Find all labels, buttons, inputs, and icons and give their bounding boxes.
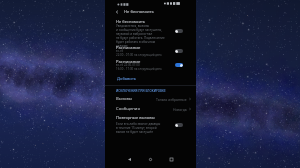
staticText: Вызовы [116,96,132,102]
button[interactable]: Toggle on [175,63,183,67]
staticText: ИСКЛЮЧЕНИЯ ПРИ БЛОКИРОВКЕ [116,89,166,93]
staticText: Повторные вызовы [116,115,155,120]
staticText: Никогда [173,107,187,112]
button[interactable]: Recents [167,155,176,164]
button[interactable]: Back [125,155,134,164]
staticText: вс-сб 22:00 - 07:00 на следующий день [116,49,182,56]
staticText: Расписание [116,59,141,65]
staticText: Сообщения [116,106,140,112]
button[interactable]: Home [146,155,155,164]
staticText: вс-сб 22:00-07:00 16:00 - 17:00 на следу… [116,63,182,70]
staticText: Не беспокоить [116,19,146,24]
staticText: Только избранные [156,97,187,102]
staticText: Добавить [117,76,137,81]
button[interactable]: Добавить [117,76,137,81]
staticText: Расписание [116,45,141,51]
staticText: Уведомления, вызовы и сообщения будут за… [116,24,167,48]
staticText: Если кто-либо звонит дважды в течение 15… [116,122,168,134]
button[interactable]: Сообщения [105,105,196,113]
button[interactable]: Toggle off [175,123,183,127]
staticText: Не беспокоить [124,9,154,15]
button[interactable]: Toggle off [175,29,183,33]
button[interactable]: Back [113,8,121,16]
button[interactable]: Toggle off [175,49,183,53]
button[interactable]: Вызовы [105,95,196,103]
